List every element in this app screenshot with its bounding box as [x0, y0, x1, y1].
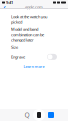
- button[interactable]: Open app: [45, 109, 57, 121]
- button[interactable]: Back: [1, 5, 8, 9]
- staticText: apple.com: [25, 4, 43, 10]
- button[interactable]: Search: [21, 109, 33, 121]
- staticText: Q: [24, 111, 29, 119]
- staticText: ‹: [3, 3, 5, 11]
- staticText: Learn more: [23, 64, 44, 69]
- staticText: 9:41: [6, 0, 13, 5]
- staticText: Model and band combination can be change…: [11, 27, 44, 42]
- staticText: Size: [11, 45, 18, 50]
- button[interactable]: Engrave toggle: [47, 54, 57, 60]
- button[interactable]: Learn more: [23, 64, 44, 69]
- button[interactable]: Apple Watch: [33, 109, 45, 121]
- staticText: Engrave: [11, 54, 25, 59]
- staticText: Look at the watch you picked: [11, 14, 47, 25]
